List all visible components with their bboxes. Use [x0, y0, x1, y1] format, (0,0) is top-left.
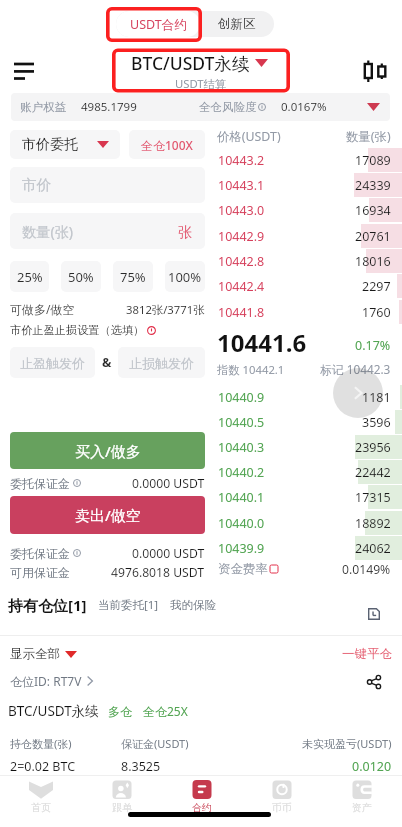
button[interactable]: 卖出/做空 — [10, 496, 205, 534]
staticText: 10440.3 — [218, 439, 265, 456]
staticText: 20761 — [355, 228, 391, 245]
staticText: 16934 — [355, 202, 391, 219]
staticText: 10440.0 — [218, 515, 265, 532]
button[interactable]: 10440.0 — [206, 511, 402, 535]
staticText: 全仓100X — [141, 137, 193, 153]
staticText: 可用保证金 — [10, 565, 70, 580]
staticText: 2297 — [362, 278, 391, 295]
staticText: 委托保证金 — [10, 476, 70, 491]
button[interactable]: 一键平仓 — [342, 646, 392, 662]
staticText: BTC/USDT永续 — [8, 702, 99, 720]
button[interactable]: 持有仓位[1] — [8, 595, 87, 615]
staticText: 10442.8 — [218, 253, 265, 270]
staticText: 资产 — [352, 801, 372, 814]
button[interactable]: 合约 — [162, 776, 242, 827]
staticText: 可做多/做空 — [10, 301, 75, 317]
button[interactable]: 仓位ID: RT7V — [10, 671, 93, 691]
button[interactable]: Order history — [362, 602, 385, 625]
staticText: 1760 — [362, 304, 391, 321]
staticText: 4976.8018 USDT — [111, 564, 205, 581]
staticText: 100% — [168, 268, 202, 286]
button[interactable]: 账户权益 — [11, 93, 390, 121]
staticText: 3812张/3771张 — [126, 302, 205, 317]
button[interactable]: 10443.2 — [206, 148, 402, 172]
button[interactable]: Share — [362, 670, 386, 694]
staticText: 市价止盈止损设置（选填） — [10, 323, 145, 337]
staticText: 10440.1 — [218, 489, 265, 506]
staticText: 0.17% — [355, 337, 391, 354]
staticText: 24339 — [355, 177, 391, 194]
staticText: 止盈触发价 — [20, 355, 85, 371]
staticText: 资金费率 — [218, 561, 268, 577]
staticText: 17315 — [355, 489, 391, 506]
staticText: 10443.0 — [218, 202, 265, 219]
staticText: 23956 — [355, 439, 391, 456]
staticText: 止损触发价 — [129, 355, 194, 371]
button[interactable]: 币币 — [242, 776, 322, 827]
button[interactable]: 买入/做多 — [10, 432, 205, 469]
staticText: 0.0167% — [281, 99, 327, 115]
staticText: 0.0149% — [342, 561, 391, 578]
staticText: 合约 — [192, 801, 212, 814]
button[interactable]: Chart — [358, 52, 398, 92]
staticText: 8.3525 — [121, 758, 161, 775]
staticText: 0.0000 USDT — [132, 475, 205, 492]
button[interactable]: 数量(张) — [10, 213, 205, 249]
button[interactable]: 10441.8 — [206, 300, 402, 324]
button[interactable]: 10440.5 — [206, 410, 402, 434]
staticText: 2=0.02 BTC — [10, 758, 76, 775]
staticText: 市价 — [22, 176, 52, 195]
button[interactable]: Expand order book — [333, 368, 383, 418]
button[interactable]: 显示全部 — [10, 644, 77, 664]
staticText: 24062 — [355, 540, 391, 557]
button[interactable]: 10442.4 — [206, 274, 402, 298]
button[interactable]: 止损触发价 — [118, 347, 205, 378]
button[interactable]: 我的保险 — [170, 598, 216, 612]
button[interactable]: 25% — [10, 261, 49, 292]
button[interactable]: 10440.1 — [206, 485, 402, 509]
button[interactable]: 75% — [113, 261, 153, 292]
button[interactable]: 跟单 — [81, 776, 162, 827]
button[interactable]: 市价委托 — [10, 130, 120, 159]
staticText: 数量(张) — [346, 128, 391, 145]
button[interactable]: 全仓100X — [129, 130, 205, 159]
button[interactable]: 10440.9 — [206, 385, 402, 409]
button[interactable]: 资产 — [322, 776, 402, 827]
staticText: 创新区 — [218, 16, 256, 32]
staticText: 18892 — [355, 515, 391, 532]
staticText: 首页 — [31, 801, 51, 814]
staticText: 0.0000 USDT — [132, 545, 205, 562]
staticText: 10442.4 — [218, 278, 265, 295]
button[interactable]: 市价 — [10, 167, 205, 203]
button[interactable]: 首页 — [0, 776, 81, 827]
button[interactable]: USDT合约 — [116, 11, 200, 37]
staticText: 买入/做多 — [75, 441, 141, 461]
button[interactable]: 创新区 — [200, 11, 274, 37]
button[interactable]: 50% — [61, 261, 101, 292]
staticText: 10441.6 — [217, 326, 307, 359]
button[interactable]: Menu — [4, 49, 44, 89]
staticText: 张 — [178, 223, 193, 241]
button[interactable]: 10443.0 — [206, 198, 402, 222]
staticText: 保证金(USDT) — [121, 736, 189, 751]
button[interactable]: 10439.9 — [206, 536, 402, 560]
staticText: 10441.8 — [218, 304, 265, 321]
button[interactable]: 100% — [165, 261, 205, 292]
button[interactable]: 10443.1 — [206, 173, 402, 197]
button[interactable]: 10440.3 — [206, 435, 402, 459]
button[interactable]: 10440.2 — [206, 460, 402, 484]
staticText: 多仓 — [108, 704, 132, 719]
button[interactable]: BTC/USDT永续 — [8, 700, 188, 722]
button[interactable]: 止盈触发价 — [10, 347, 95, 378]
staticText: 10439.9 — [218, 540, 265, 557]
button[interactable]: 10442.8 — [206, 249, 402, 273]
button[interactable]: 10442.9 — [206, 224, 402, 248]
staticText: 标记 10442.3 — [320, 361, 391, 377]
staticText: 数量(张) — [22, 222, 74, 241]
staticText: 持仓数量(张) — [10, 736, 72, 751]
button[interactable]: BTC/USDT永续 — [120, 50, 282, 92]
staticText: 10443.2 — [218, 152, 265, 169]
button[interactable]: 当前委托[1] — [98, 597, 159, 613]
staticText: 17089 — [355, 152, 391, 169]
staticText: BTC/USDT永续 — [131, 51, 250, 75]
